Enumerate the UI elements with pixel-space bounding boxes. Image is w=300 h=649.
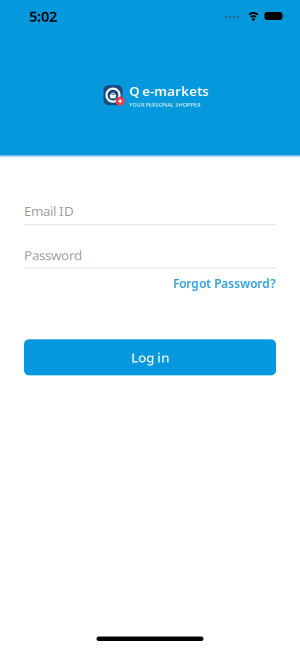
staticText: Email ID bbox=[24, 202, 74, 220]
staticText: Q e-markets bbox=[129, 82, 209, 100]
staticText: Password bbox=[24, 246, 82, 264]
button[interactable]: Email ID bbox=[24, 202, 276, 225]
staticText: YOUR PERSONAL SHOPPER bbox=[129, 101, 200, 108]
staticText: Log in bbox=[131, 348, 169, 366]
button[interactable]: Log in bbox=[24, 339, 276, 375]
button[interactable]: Password bbox=[24, 246, 276, 268]
button[interactable]: Forgot Password? bbox=[173, 275, 276, 291]
staticText: Forgot Password? bbox=[173, 275, 276, 291]
staticText: 5:02 bbox=[29, 6, 57, 26]
